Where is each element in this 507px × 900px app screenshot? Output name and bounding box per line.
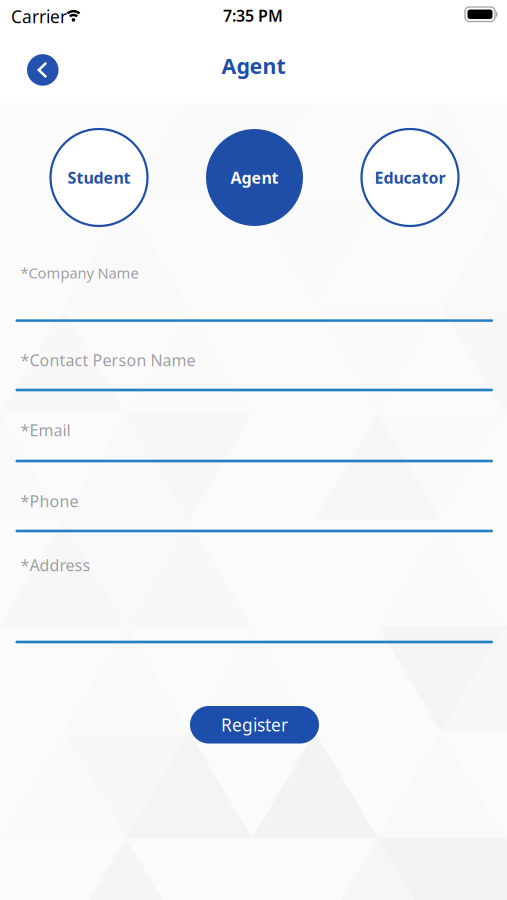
- button[interactable]: Company Name: [15, 260, 507, 322]
- staticText: *Phone: [20, 490, 78, 512]
- button[interactable]: Educator: [361, 129, 458, 226]
- button[interactable]: Address: [15, 552, 507, 644]
- button[interactable]: Phone: [15, 485, 507, 533]
- staticText: Agent: [221, 51, 285, 80]
- staticText: Agent: [230, 167, 278, 188]
- button[interactable]: Agent: [206, 129, 303, 226]
- staticText: Carrier: [11, 5, 67, 28]
- staticText: *Company Name: [20, 263, 138, 282]
- staticText: Student: [67, 167, 130, 188]
- button[interactable]: Back: [27, 54, 58, 86]
- staticText: *Email: [20, 419, 70, 441]
- button[interactable]: Contact Person Name: [15, 344, 507, 392]
- staticText: 7:35 PM: [223, 5, 283, 26]
- button[interactable]: Register: [190, 706, 319, 743]
- staticText: *Address: [20, 554, 90, 576]
- button[interactable]: Email: [15, 415, 507, 463]
- staticText: Register: [221, 713, 288, 736]
- staticText: *Contact Person Name: [20, 349, 195, 371]
- staticText: Educator: [374, 167, 445, 188]
- button[interactable]: Student: [50, 129, 147, 226]
